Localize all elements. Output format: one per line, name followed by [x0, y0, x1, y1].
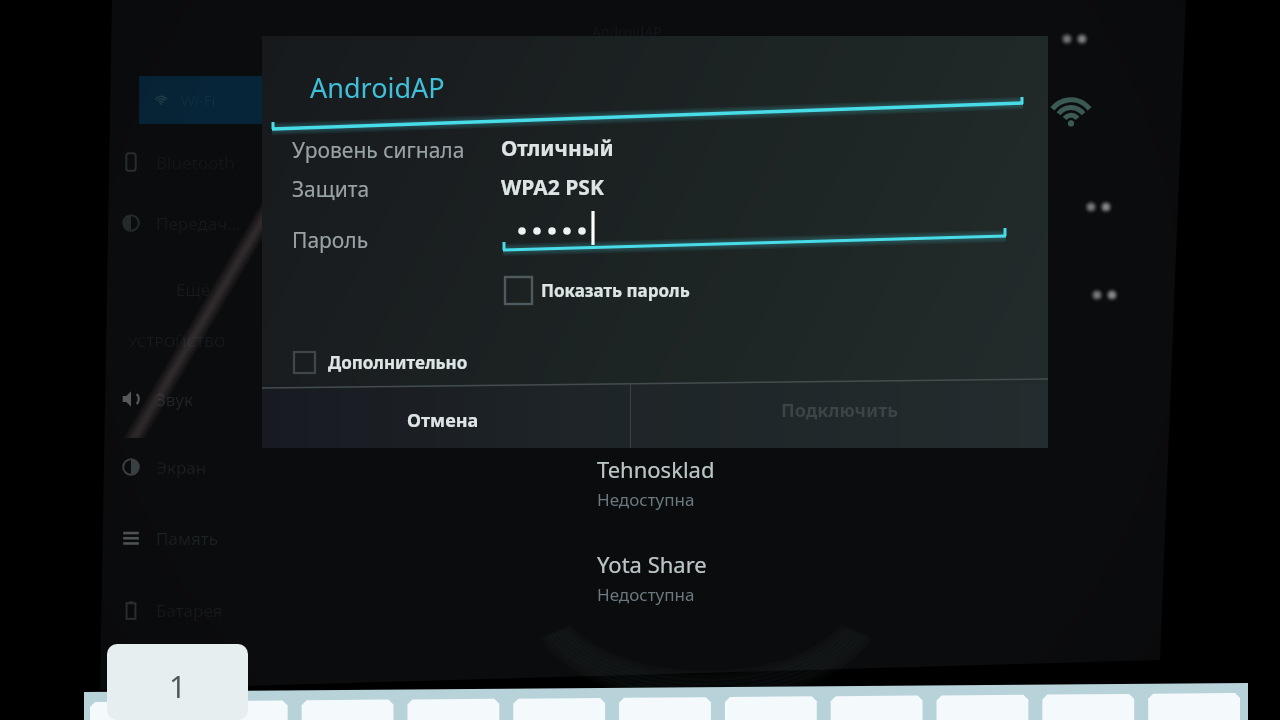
staticText: AndroidAP — [592, 22, 662, 41]
staticText: Передач… — [156, 212, 241, 235]
staticText: Пароль — [292, 226, 369, 255]
button[interactable]: Звук — [110, 379, 285, 419]
staticText: Экран — [156, 456, 207, 479]
staticText: Tehnosklad — [597, 454, 715, 484]
staticText: Память — [156, 527, 218, 550]
staticText: WPA2 PSK — [501, 173, 604, 202]
button[interactable]: Bluetooth — [110, 142, 285, 182]
staticText: Отличный — [501, 134, 614, 163]
staticText: Дополнительно — [328, 351, 468, 374]
staticText: 1 — [169, 666, 187, 707]
staticText: Отмена — [407, 408, 479, 433]
button[interactable]: Память — [110, 518, 285, 558]
staticText: Ещё — [176, 278, 211, 301]
staticText: Защита — [292, 175, 370, 204]
button[interactable]: Wi-Fi signal strength — [1058, 26, 1098, 52]
button[interactable]: Передач… — [110, 203, 285, 243]
button[interactable]: Wi-Fi signal strength — [1040, 80, 1102, 142]
button[interactable]: Yota Share — [597, 549, 937, 606]
button[interactable]: Wi-Fi signal strength — [1082, 194, 1122, 220]
button[interactable]: Экран — [110, 447, 285, 487]
staticText: Недоступна — [597, 488, 695, 511]
button[interactable]: Батарея — [110, 590, 285, 630]
staticText: Уровень сигнала — [292, 136, 465, 165]
staticText: Батарея — [156, 599, 223, 622]
staticText: Подключить — [781, 398, 898, 423]
staticText: Показать пароль — [541, 279, 690, 302]
button[interactable] — [84, 676, 1248, 720]
button[interactable]: Tehnosklad — [597, 454, 937, 511]
staticText: Недоступна — [597, 583, 695, 606]
staticText: Yota Share — [597, 549, 707, 579]
button[interactable]: Ещё — [110, 269, 285, 309]
button[interactable]: Отмена — [262, 384, 630, 448]
button[interactable]: 1 — [107, 644, 248, 720]
button[interactable]: Подключить — [631, 384, 1048, 448]
button[interactable]: Дополнительно — [294, 346, 554, 378]
staticText: AndroidAP — [310, 69, 445, 106]
button[interactable]: Wi-Fi signal strength — [1088, 282, 1128, 308]
staticText: УСТРОЙСТВО — [128, 331, 226, 351]
button[interactable]: Wi-Fi — [139, 76, 278, 124]
button[interactable]: Показать пароль — [505, 276, 765, 304]
staticText: Звук — [156, 388, 193, 411]
